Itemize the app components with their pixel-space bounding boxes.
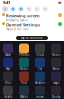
staticText: Clock bbox=[36, 53, 43, 57]
staticText: Files bbox=[5, 81, 11, 85]
button[interactable]: Health bbox=[2, 85, 14, 98]
staticText: 9:41 bbox=[3, 0, 10, 5]
button[interactable]: Maps bbox=[50, 71, 62, 84]
staticText: Photos bbox=[19, 53, 29, 57]
staticText: Weather bbox=[34, 81, 45, 85]
staticText: Notes bbox=[52, 53, 60, 57]
staticText: Health bbox=[3, 95, 12, 99]
staticText: Cal bbox=[38, 67, 42, 71]
button[interactable]: Notes bbox=[50, 43, 62, 56]
button[interactable]: Notes bbox=[18, 57, 30, 70]
button[interactable]: Music bbox=[50, 57, 62, 70]
button[interactable]: Cal bbox=[34, 57, 46, 70]
staticText: Reviewing screen bbox=[6, 13, 40, 18]
button[interactable]: Clock bbox=[34, 43, 46, 56]
staticText: Mail bbox=[5, 67, 10, 71]
staticText: Music bbox=[52, 67, 59, 71]
button[interactable]: Wallet bbox=[18, 85, 30, 98]
button[interactable]: tap to continue bbox=[16, 36, 48, 40]
button[interactable]: Safari bbox=[2, 43, 14, 56]
staticText: Home bbox=[36, 95, 44, 99]
staticText: Books bbox=[52, 95, 60, 99]
button[interactable]: Home bbox=[34, 85, 46, 98]
staticText: ▮▮▮ bbox=[58, 1, 61, 4]
staticText: Pod bbox=[21, 81, 27, 85]
button[interactable]: Files bbox=[2, 71, 14, 84]
staticText: Maps bbox=[53, 81, 59, 85]
button[interactable]: Books bbox=[50, 85, 62, 98]
button[interactable]: Mail bbox=[2, 57, 14, 70]
button[interactable]: Pod bbox=[18, 71, 30, 84]
staticText: tap to continue bbox=[21, 36, 43, 40]
staticText: Tapped the icon bbox=[6, 27, 29, 31]
staticText: Analyzing layout bbox=[6, 18, 28, 22]
button[interactable]: Weather bbox=[34, 71, 46, 84]
staticText: Wallet bbox=[20, 95, 28, 99]
staticText: Opened Settings bbox=[6, 22, 40, 27]
staticText: Safari bbox=[5, 53, 11, 57]
staticText: Notes bbox=[20, 67, 28, 71]
button[interactable]: Photos bbox=[18, 43, 30, 56]
